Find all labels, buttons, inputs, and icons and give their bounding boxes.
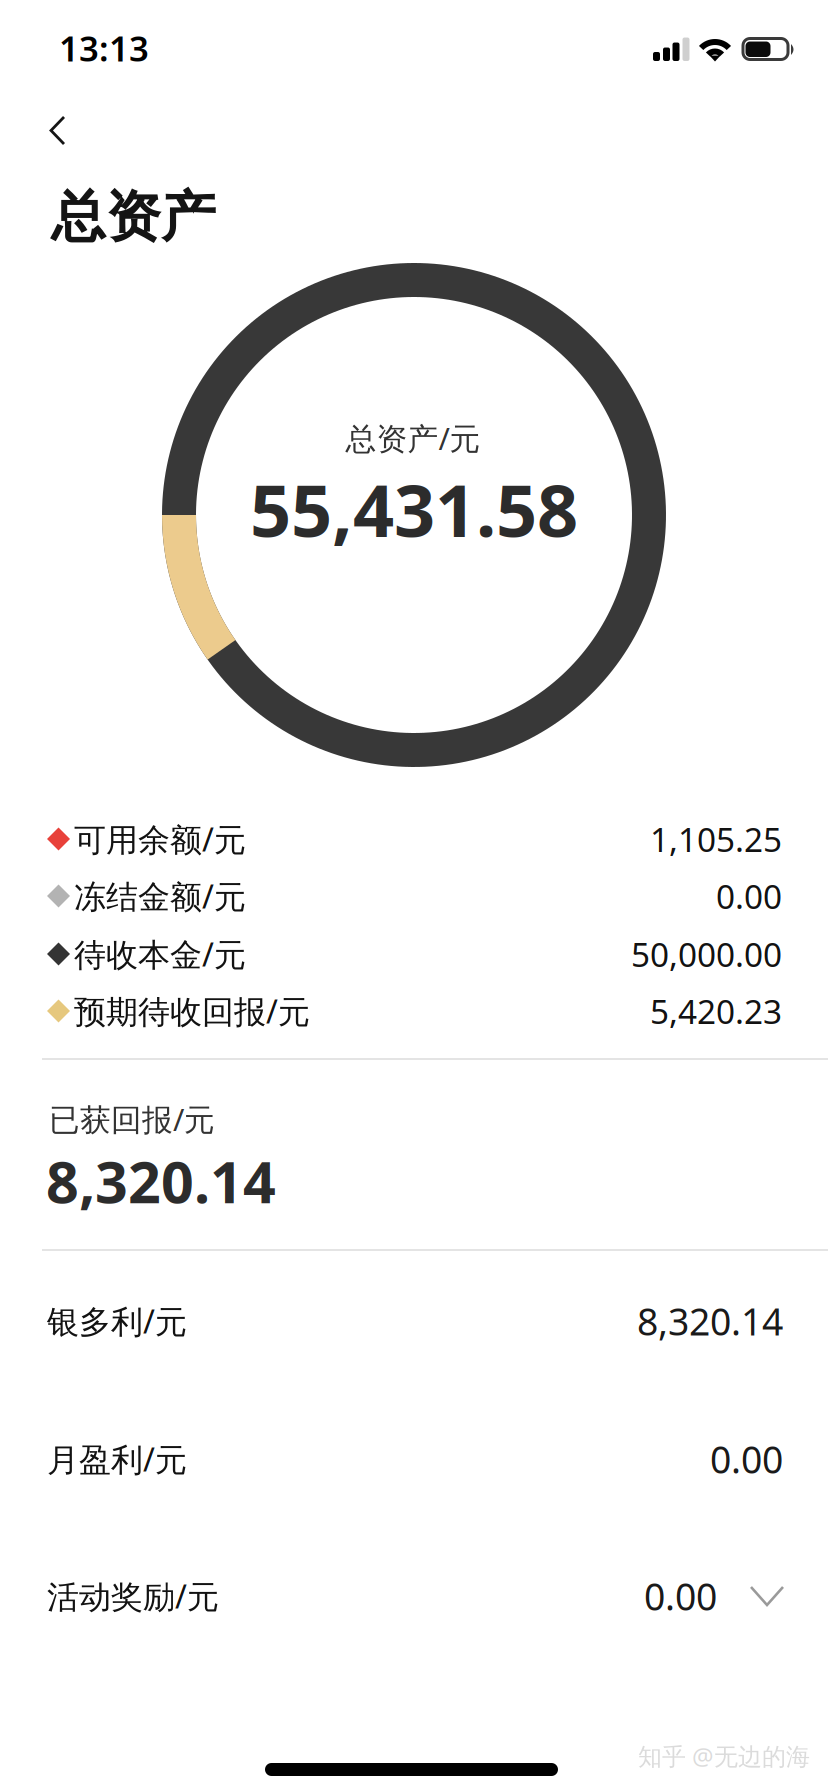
staticText: 0.00	[716, 874, 782, 918]
staticText: 8,320.14	[46, 1143, 276, 1219]
staticText: 50,000.00	[631, 932, 782, 976]
staticText: 0.00	[710, 1434, 783, 1484]
staticText: 冻结金额/元	[74, 875, 246, 917]
button[interactable]: 月盈利/元	[0, 1390, 828, 1527]
staticText: 银多利/元	[47, 1300, 187, 1342]
staticText: 待收本金/元	[74, 933, 246, 975]
staticText: 1,105.25	[650, 817, 782, 861]
staticText: 13:13	[59, 25, 149, 71]
staticText: 预期待收回报/元	[74, 990, 310, 1032]
staticText: 月盈利/元	[47, 1438, 187, 1480]
button[interactable]: Back	[0, 0, 828, 1792]
button[interactable]: 活动奖励/元	[0, 1527, 828, 1664]
staticText: 知乎 @无边的海	[638, 1740, 810, 1772]
staticText: 8,320.14	[637, 1296, 783, 1346]
staticText: 55,431.58	[250, 461, 578, 557]
staticText: 可用余额/元	[74, 818, 246, 860]
staticText: 已获回报/元	[49, 1099, 215, 1139]
staticText: 5,420.23	[650, 989, 782, 1033]
button[interactable]: 银多利/元	[0, 1252, 828, 1389]
staticText: 总资产	[51, 183, 216, 250]
staticText: 总资产/元	[345, 418, 480, 458]
staticText: 0.00	[644, 1571, 717, 1621]
staticText: 活动奖励/元	[47, 1575, 219, 1617]
